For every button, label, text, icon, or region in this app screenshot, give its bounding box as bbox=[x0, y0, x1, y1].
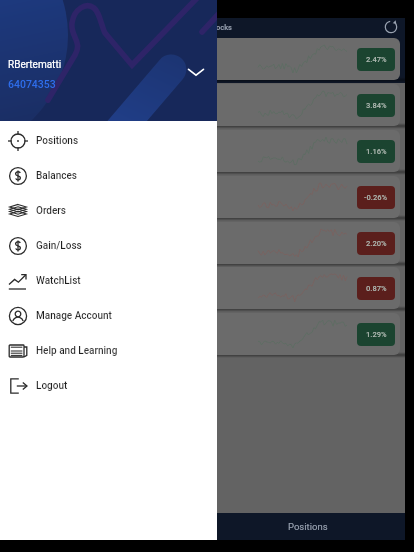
button[interactable]: Refresh bbox=[383, 19, 399, 35]
staticText: 64074353 bbox=[8, 78, 56, 90]
button[interactable]: 1.29% bbox=[5, 313, 400, 355]
button[interactable]: Expand account bbox=[185, 61, 207, 83]
staticText: Gain/Loss bbox=[36, 240, 82, 252]
button[interactable]: Positions bbox=[0, 123, 217, 158]
staticText: 2.47% bbox=[366, 55, 387, 64]
staticText: 0.87% bbox=[366, 284, 387, 293]
staticText: Balances bbox=[36, 170, 78, 182]
staticText: 1.16% bbox=[366, 147, 387, 156]
button[interactable]: 0.87% bbox=[5, 267, 400, 309]
staticText: My Stocks bbox=[197, 23, 232, 32]
button[interactable]: -0.26% bbox=[5, 176, 400, 218]
staticText: RBertematti bbox=[8, 59, 62, 71]
button[interactable]: 2.47% bbox=[5, 38, 400, 80]
staticText: Manage Account bbox=[36, 310, 112, 322]
staticText: Help and Learning bbox=[36, 345, 118, 357]
button[interactable]: 1.16% bbox=[5, 130, 400, 172]
button[interactable]: WatchList bbox=[0, 263, 217, 298]
button[interactable]: 3.84% bbox=[5, 84, 400, 126]
button[interactable]: Logout bbox=[0, 368, 217, 403]
staticText: Logout bbox=[36, 380, 68, 392]
staticText: 3.84% bbox=[366, 101, 387, 110]
button[interactable]: Help and Learning bbox=[0, 333, 217, 368]
button[interactable]: Manage Account bbox=[0, 298, 217, 333]
staticText: 1.29% bbox=[366, 330, 387, 339]
button[interactable]: Gain/Loss bbox=[0, 228, 217, 263]
staticText: Orders bbox=[36, 205, 67, 217]
button[interactable]: Positions bbox=[202, 513, 405, 540]
staticText: 2.20% bbox=[366, 239, 387, 248]
button[interactable]: 2.20% bbox=[5, 222, 400, 264]
staticText: Positions bbox=[288, 521, 328, 532]
staticText: WatchList bbox=[36, 275, 81, 287]
staticText: Positions bbox=[36, 135, 79, 147]
staticText: -0.26% bbox=[364, 193, 388, 202]
button[interactable]: Balances bbox=[0, 158, 217, 193]
button[interactable]: Orders bbox=[0, 193, 217, 228]
